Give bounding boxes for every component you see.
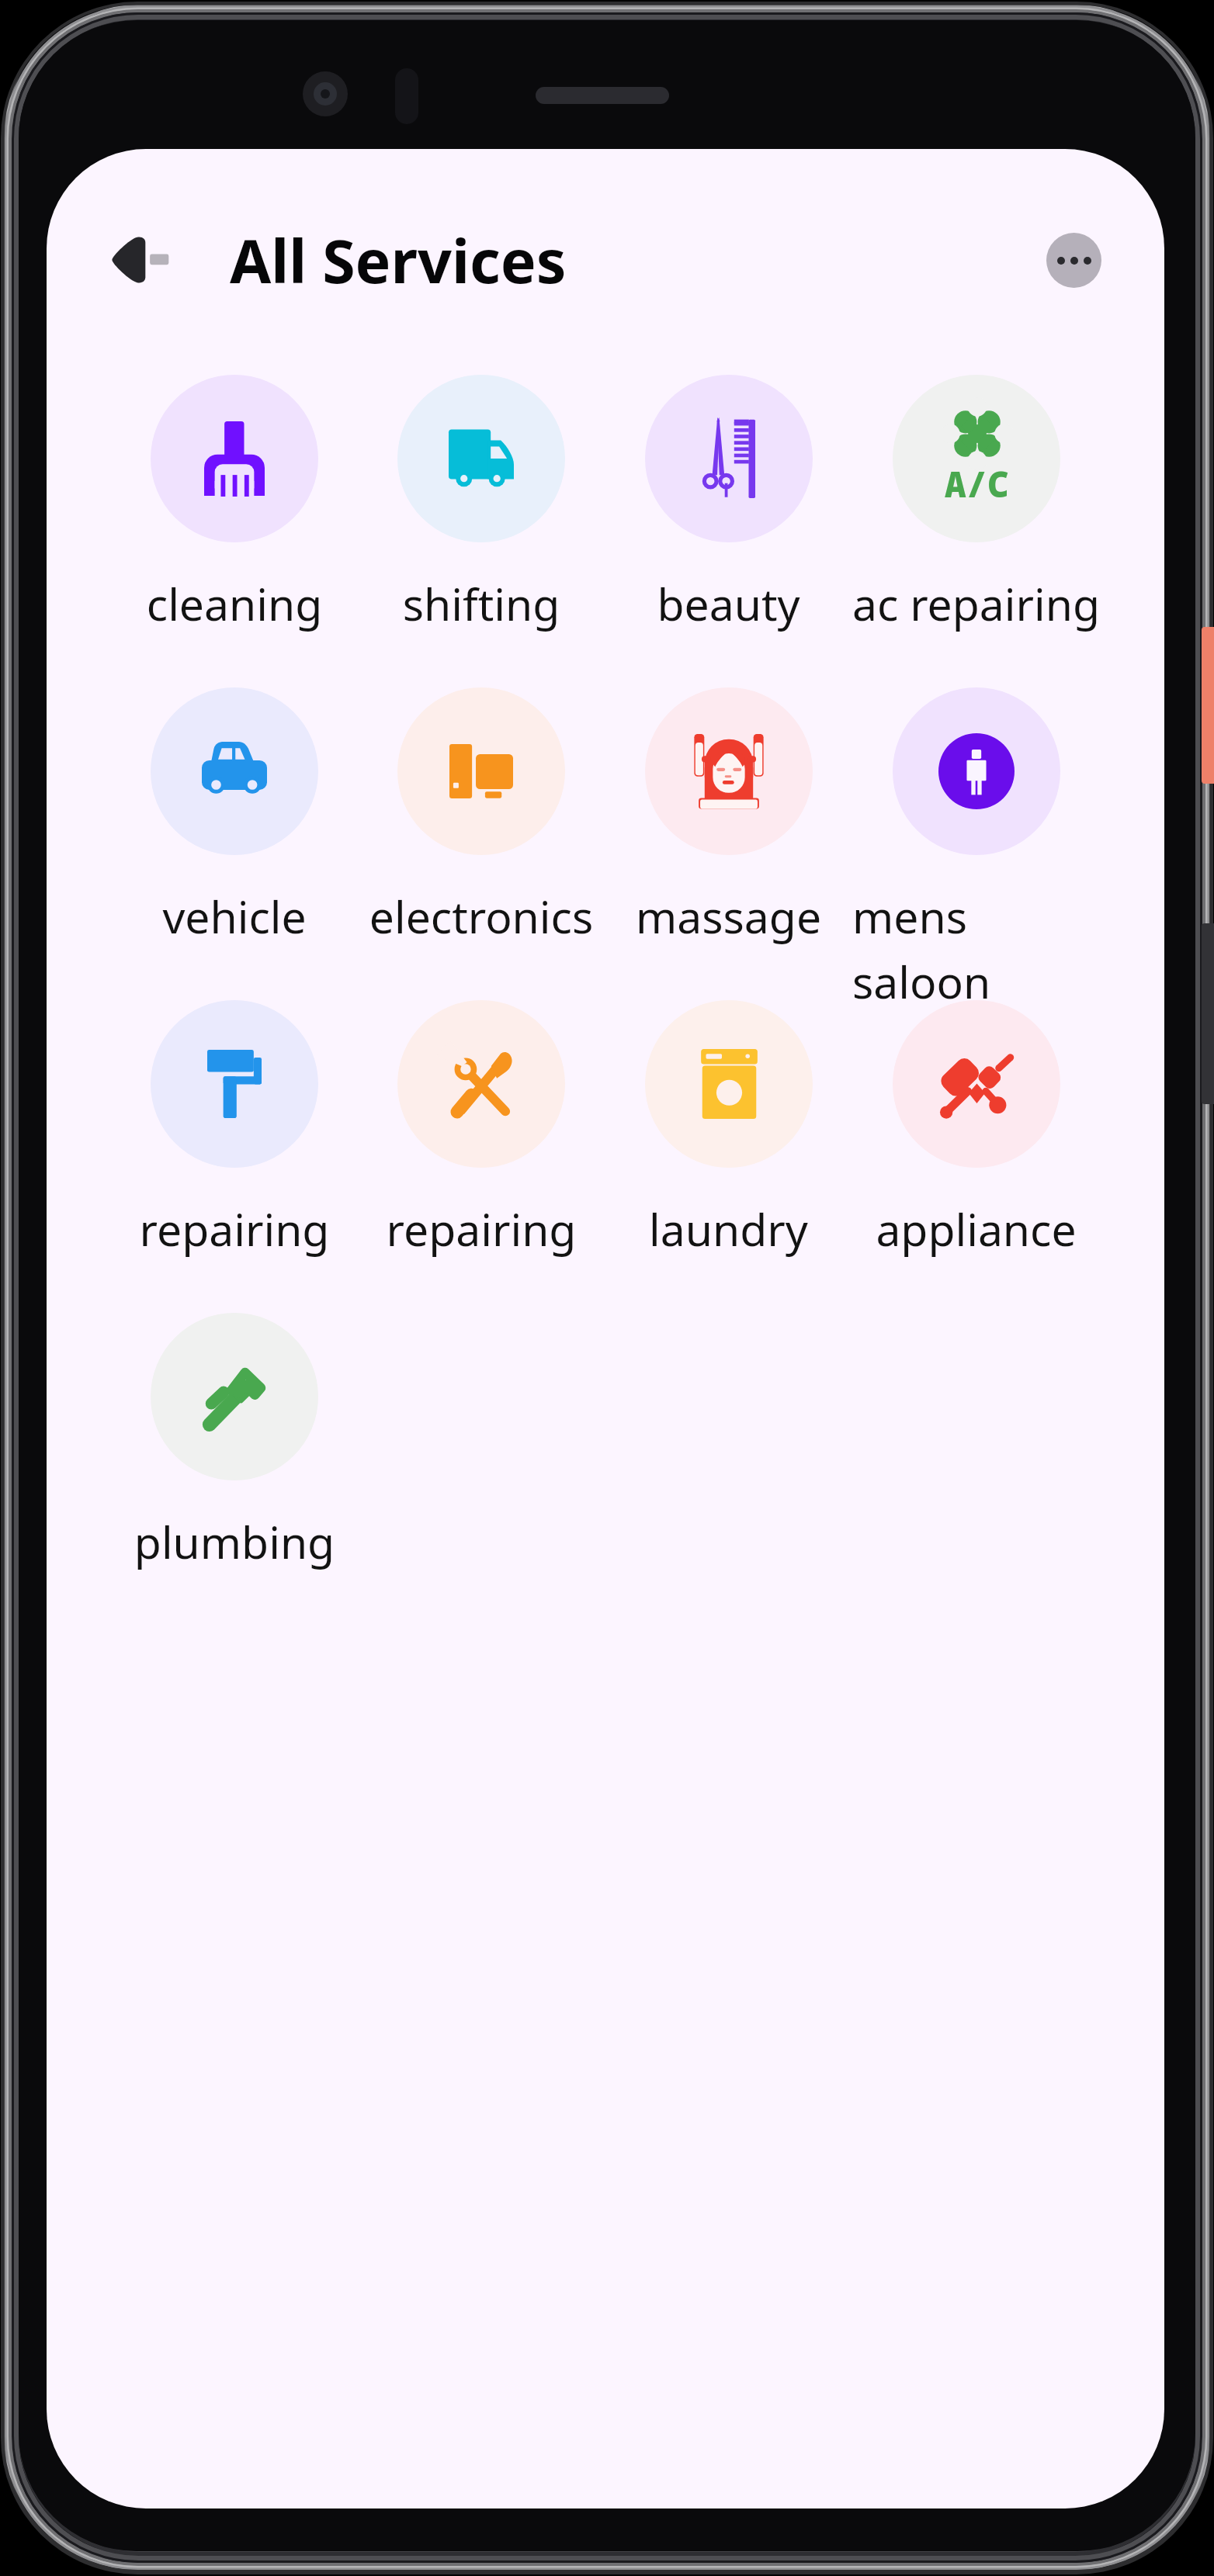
staticText: electronics: [358, 886, 605, 947]
staticText: beauty: [605, 573, 852, 634]
staticText: repairing: [111, 1199, 358, 1259]
staticText: A/C: [945, 459, 1009, 508]
button[interactable]: cleaning: [111, 375, 358, 634]
button[interactable]: vehicle: [111, 687, 358, 947]
staticText: plumbing: [111, 1511, 358, 1572]
button[interactable]: massage: [605, 687, 852, 947]
staticText: cleaning: [111, 573, 358, 634]
button[interactable]: laundry: [605, 1000, 852, 1259]
button[interactable]: repairing: [358, 1000, 605, 1259]
button[interactable]: mens saloon: [852, 687, 1100, 1012]
button[interactable]: plumbing: [111, 1313, 358, 1572]
staticText: laundry: [605, 1199, 852, 1259]
staticText: massage: [605, 886, 852, 947]
button[interactable]: repairing: [111, 1000, 358, 1259]
button[interactable]: beauty: [605, 375, 852, 634]
button[interactable]: shifting: [358, 375, 605, 634]
staticText: shifting: [358, 573, 605, 634]
staticText: repairing: [358, 1199, 605, 1259]
button[interactable]: electronics: [358, 687, 605, 947]
staticText: vehicle: [111, 886, 358, 947]
staticText: appliance: [852, 1199, 1100, 1259]
button[interactable]: Back: [112, 220, 193, 300]
button[interactable]: appliance: [852, 1000, 1100, 1259]
staticText: All Services: [230, 220, 567, 301]
staticText: mens saloon: [852, 886, 1100, 1012]
staticText: ac repairing: [852, 573, 1100, 634]
button[interactable]: More options: [1046, 233, 1101, 288]
button[interactable]: A/C: [852, 375, 1100, 634]
